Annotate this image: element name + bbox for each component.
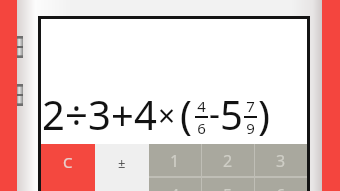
button[interactable]: 6: [255, 178, 307, 191]
staticText: 4: [197, 96, 206, 116]
button[interactable]: ±: [95, 144, 149, 191]
button[interactable]: 2: [202, 144, 254, 177]
staticText: 5: [223, 184, 233, 191]
staticText: 4: [170, 184, 180, 191]
staticText: ×: [158, 95, 176, 136]
button[interactable]: C: [41, 144, 95, 191]
staticText: 5: [220, 87, 243, 141]
button[interactable]: 3: [255, 144, 307, 177]
staticText: ): [258, 87, 270, 141]
staticText: (: [180, 87, 192, 141]
staticText: -: [209, 90, 220, 136]
staticText: ±: [118, 154, 126, 172]
staticText: 9: [246, 118, 255, 138]
staticText: 4: [134, 87, 157, 141]
staticText: +: [111, 87, 134, 141]
staticText: C: [63, 152, 73, 172]
staticText: 6: [276, 184, 286, 191]
button[interactable]: Hardware button: [17, 36, 23, 58]
button[interactable]: 4: [149, 178, 201, 191]
button[interactable]: 5: [202, 178, 254, 191]
staticText: 2: [223, 150, 233, 172]
button[interactable]: Hardware button: [17, 84, 23, 106]
staticText: 6: [197, 118, 206, 138]
staticText: 1: [170, 150, 180, 172]
staticText: 7: [246, 96, 255, 116]
staticText: 3: [88, 87, 111, 141]
staticText: 3: [276, 150, 286, 172]
staticText: 2: [42, 87, 65, 141]
staticText: ÷: [65, 87, 88, 141]
button[interactable]: 1: [149, 144, 201, 177]
